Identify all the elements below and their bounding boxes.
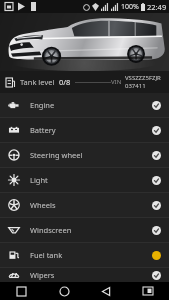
button[interactable]: Wipers — [0, 268, 169, 282]
staticText: 22:49 — [147, 2, 167, 12]
button[interactable]: Fuel tank — [0, 243, 169, 267]
staticText: 100% — [121, 2, 139, 12]
staticText: Engine — [30, 100, 55, 110]
staticText: Fuel tank — [30, 250, 63, 260]
button[interactable]: Steering wheel — [0, 143, 169, 167]
staticText: Light — [30, 175, 48, 185]
staticText: VIN — [111, 78, 122, 86]
button[interactable]: Battery — [0, 118, 169, 142]
button[interactable]: Home — [43, 282, 85, 300]
button[interactable]: Screenshot — [127, 282, 169, 300]
button[interactable]: Light — [0, 168, 169, 192]
staticText: VSSZZZ5FZJR037411 — [125, 74, 163, 90]
staticText: 0/8 — [59, 77, 71, 87]
button[interactable]: Wheels — [0, 193, 169, 217]
button[interactable]: Engine — [0, 93, 169, 117]
staticText: Steering wheel — [30, 150, 83, 160]
button[interactable]: Back — [85, 282, 127, 300]
button[interactable]: Windscreen — [0, 218, 169, 242]
staticText: Wipers — [30, 270, 55, 280]
staticText: Windscreen — [30, 225, 72, 235]
staticText: Battery — [30, 125, 56, 135]
staticText: Tank level — [20, 77, 55, 87]
staticText: Wheels — [30, 200, 56, 210]
button[interactable]: Recent apps — [0, 282, 43, 300]
